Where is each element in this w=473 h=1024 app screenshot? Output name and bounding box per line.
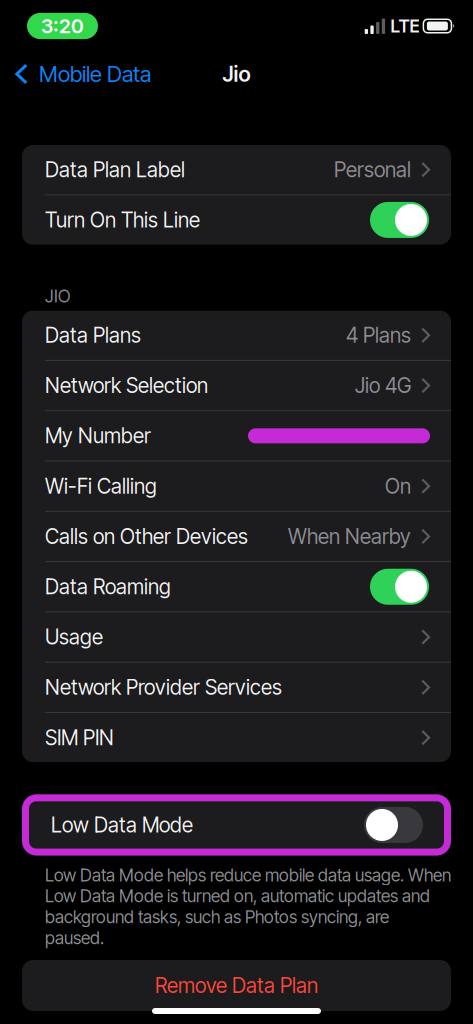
button[interactable]: Data Roaming xyxy=(22,562,451,611)
staticText: Usage xyxy=(45,624,103,649)
staticText: Jio 4G xyxy=(355,373,411,398)
staticText: SIM PIN xyxy=(45,725,114,750)
button[interactable]: Wi-Fi Calling xyxy=(22,461,451,511)
staticText: LTE xyxy=(390,15,419,37)
staticText: Mobile Data xyxy=(39,61,151,87)
button[interactable]: Network Provider Services xyxy=(22,663,451,712)
staticText: On xyxy=(385,474,411,499)
button[interactable]: Data Plan Label xyxy=(22,145,451,194)
button[interactable]: My Number xyxy=(22,411,451,460)
button[interactable]: SIM PIN xyxy=(22,713,451,762)
staticText: Wi-Fi Calling xyxy=(45,474,157,499)
button[interactable]: Low Data Mode xyxy=(28,800,445,850)
button[interactable]: Remove Data Plan xyxy=(0,960,473,1011)
staticText: Personal xyxy=(334,157,411,182)
staticText: 4 Plans xyxy=(346,323,411,348)
staticText: Data Plan Label xyxy=(45,157,185,182)
staticText: Remove Data Plan xyxy=(155,973,318,998)
button[interactable]: Usage xyxy=(22,612,451,662)
button[interactable]: Turn On This Line xyxy=(22,195,451,245)
button[interactable]: Calls on Other Devices xyxy=(22,512,451,561)
staticText: Low Data Mode xyxy=(51,812,193,837)
staticText: JIO xyxy=(45,286,70,307)
staticText: Turn On This Line xyxy=(45,207,200,232)
staticText: Low Data Mode helps reduce mobile data u… xyxy=(45,865,451,948)
staticText: When Nearby xyxy=(288,524,411,549)
staticText: Jio xyxy=(222,61,250,87)
staticText: Network Provider Services xyxy=(45,675,282,700)
staticText: Calls on Other Devices xyxy=(45,524,248,549)
staticText: My Number xyxy=(45,423,151,448)
button[interactable]: Data Plans xyxy=(22,311,451,360)
button[interactable]: Mobile Data xyxy=(0,52,165,96)
staticText: Data Roaming xyxy=(45,574,171,599)
staticText: Network Selection xyxy=(45,373,208,398)
staticText: Data Plans xyxy=(45,323,141,348)
button[interactable]: Network Selection xyxy=(22,361,451,410)
staticText: 3:20 xyxy=(41,14,84,38)
